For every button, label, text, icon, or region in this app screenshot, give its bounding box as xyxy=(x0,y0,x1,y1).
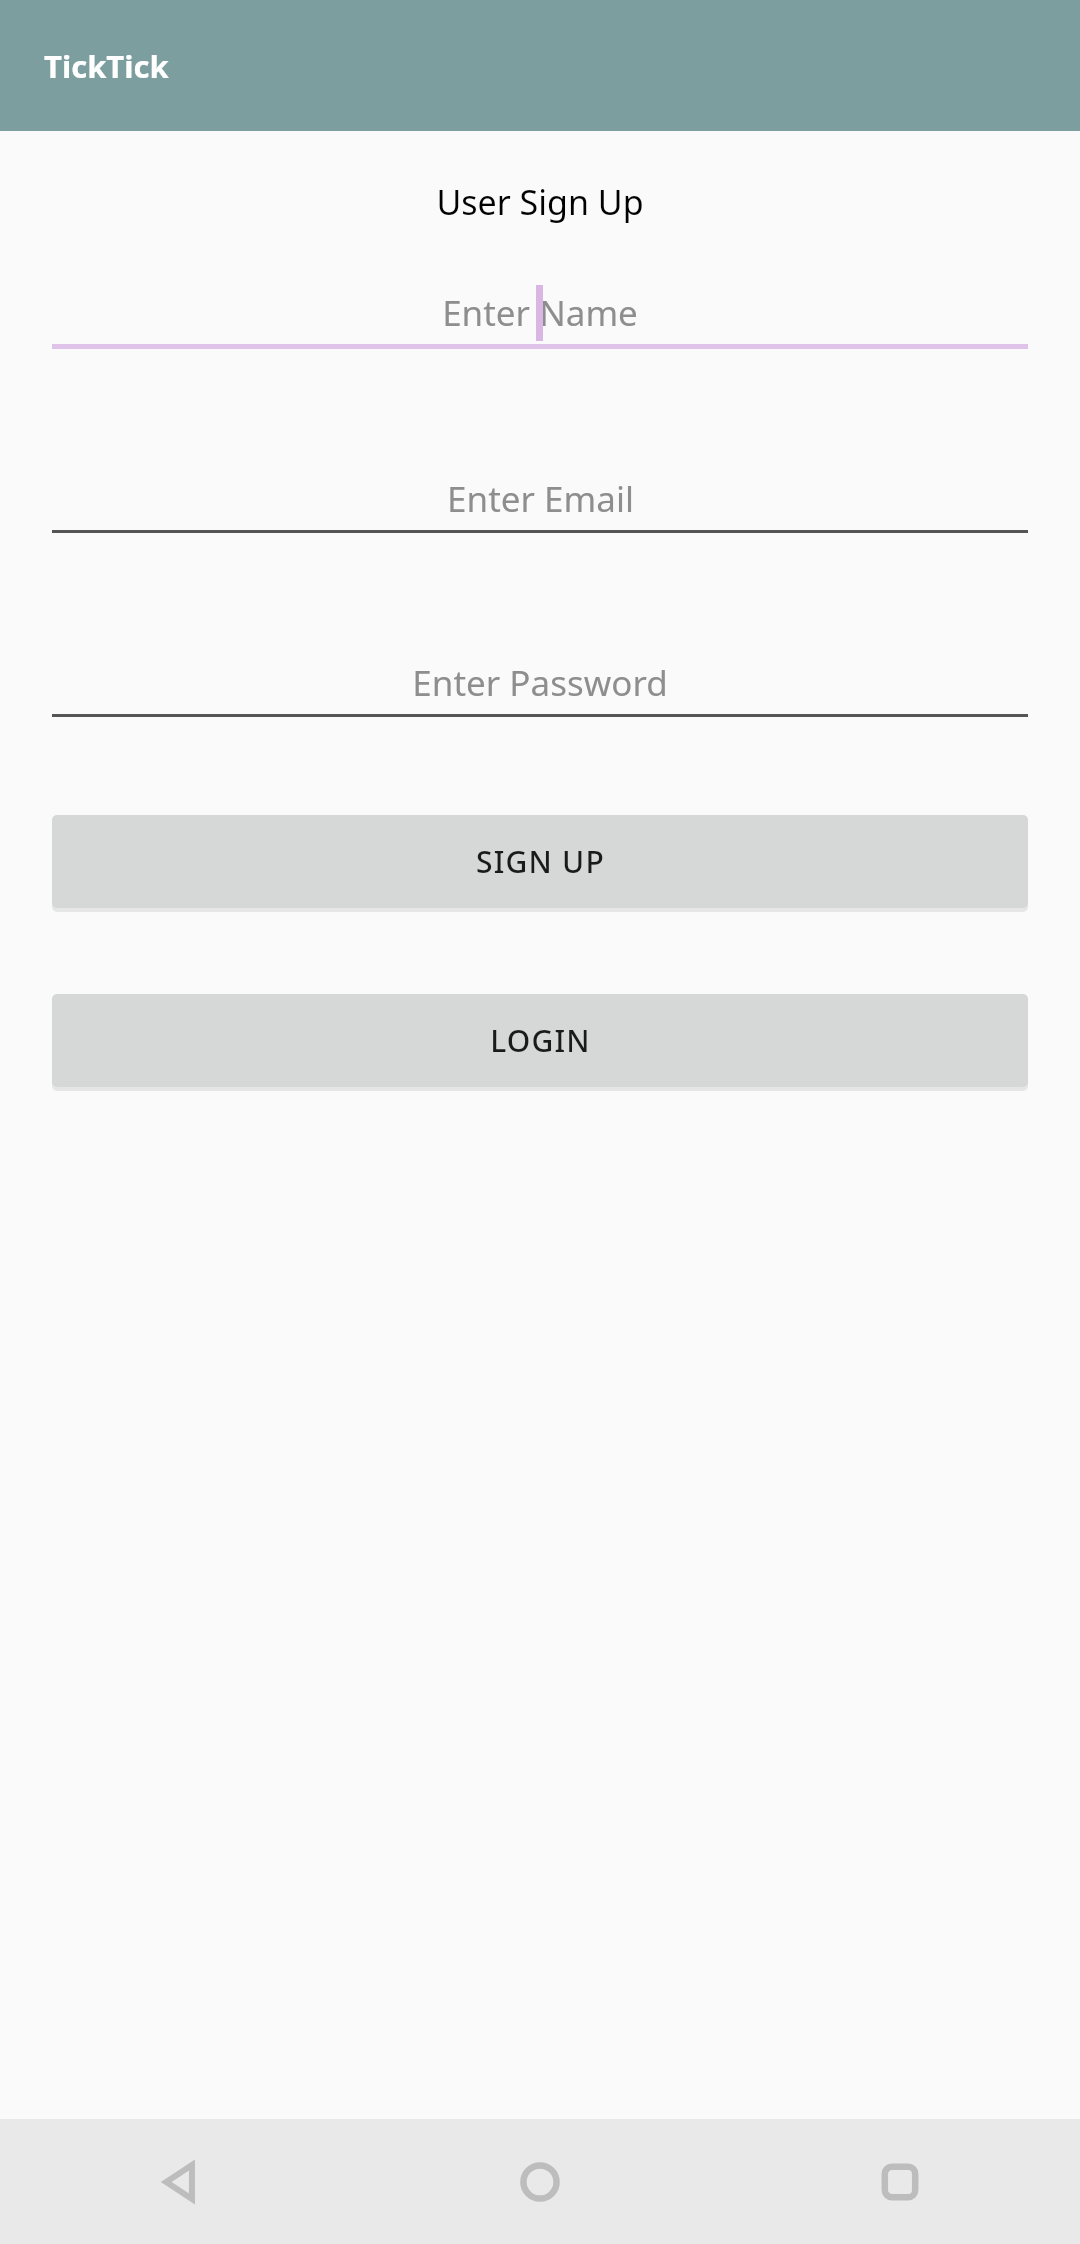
button[interactable]: SIGN UP xyxy=(52,815,1028,908)
button[interactable]: Enter Password xyxy=(52,652,1028,717)
button[interactable]: Home xyxy=(360,2119,720,2244)
staticText: TickTick xyxy=(44,45,169,87)
staticText: User Sign Up xyxy=(0,179,1080,225)
staticText: SIGN UP xyxy=(476,841,605,882)
staticText: Enter Name xyxy=(442,289,638,337)
button[interactable]: Recent apps xyxy=(720,2119,1080,2244)
button[interactable]: LOGIN xyxy=(52,994,1028,1087)
staticText: Enter Email xyxy=(447,475,634,523)
staticText: LOGIN xyxy=(490,1020,591,1061)
button[interactable]: Enter Name xyxy=(52,282,1028,349)
button[interactable]: Enter Email xyxy=(52,468,1028,533)
staticText: Enter Password xyxy=(412,659,668,707)
button[interactable]: Back xyxy=(0,2119,360,2244)
